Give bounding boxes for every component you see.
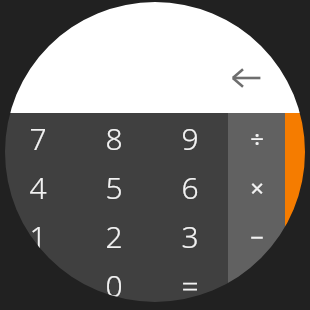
button[interactable]: 6 bbox=[152, 163, 228, 212]
staticText: 1 bbox=[29, 216, 47, 257]
button[interactable]: 7 bbox=[0, 113, 76, 163]
button[interactable]: Back bbox=[0, 0, 310, 113]
button[interactable]: 1 bbox=[0, 212, 76, 261]
button[interactable]: Clear bbox=[285, 113, 310, 163]
button[interactable]: 9 bbox=[152, 113, 228, 163]
staticText: = bbox=[181, 265, 199, 306]
staticText: 9 bbox=[181, 118, 199, 159]
button[interactable]: Back bbox=[229, 62, 263, 94]
button[interactable]: − bbox=[228, 212, 285, 261]
staticText: − bbox=[250, 220, 264, 253]
button[interactable]: = bbox=[152, 261, 228, 310]
button[interactable]: ÷ bbox=[228, 113, 285, 163]
button[interactable]: Clear bbox=[285, 163, 310, 212]
button[interactable]: + bbox=[228, 261, 285, 310]
button[interactable]: 2 bbox=[76, 212, 152, 261]
staticText: 0 bbox=[105, 265, 123, 306]
button[interactable]: 3 bbox=[152, 212, 228, 261]
button[interactable]: 5 bbox=[76, 163, 152, 212]
staticText: 8 bbox=[105, 118, 123, 159]
staticText: × bbox=[250, 171, 264, 204]
staticText: 6 bbox=[181, 167, 199, 208]
button[interactable]: Clear bbox=[285, 212, 310, 261]
staticText: 3 bbox=[181, 216, 199, 257]
button[interactable]: 0 bbox=[76, 261, 152, 310]
staticText: ÷ bbox=[250, 122, 264, 155]
button[interactable]: 4 bbox=[0, 163, 76, 212]
staticText: 4 bbox=[29, 167, 47, 208]
staticText: 5 bbox=[105, 167, 123, 208]
button[interactable]: × bbox=[228, 163, 285, 212]
button[interactable]: . bbox=[0, 261, 76, 310]
staticText: 2 bbox=[105, 216, 123, 257]
staticText: 7 bbox=[29, 118, 47, 159]
button[interactable]: 8 bbox=[76, 113, 152, 163]
